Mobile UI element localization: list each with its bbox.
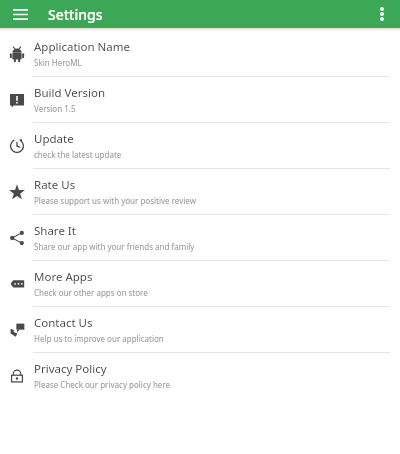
button[interactable]: Contact Us: [0, 307, 400, 352]
staticText: Skin HeroML: [34, 57, 82, 68]
button[interactable]: More options: [369, 1, 395, 27]
button[interactable]: Open navigation menu: [6, 0, 34, 28]
staticText: Check our other apps on store: [34, 287, 148, 298]
button[interactable]: Privacy Policy: [0, 353, 400, 398]
staticText: Share our app with your friends and fami…: [34, 241, 195, 252]
button[interactable]: Share It: [0, 215, 400, 260]
button[interactable]: Rate Us: [0, 169, 400, 214]
staticText: Update: [34, 131, 74, 147]
button[interactable]: Build Version: [0, 77, 400, 122]
staticText: Share It: [34, 223, 76, 239]
button[interactable]: Update: [0, 123, 400, 168]
staticText: More Apps: [34, 269, 93, 285]
button[interactable]: More Apps: [0, 261, 400, 306]
staticText: Contact Us: [34, 315, 93, 331]
staticText: Application Name: [34, 39, 131, 55]
staticText: Please support us with your positive rev…: [34, 195, 196, 206]
staticText: Privacy Policy: [34, 361, 107, 377]
button[interactable]: Application Name: [0, 31, 400, 76]
staticText: Settings: [48, 5, 103, 24]
staticText: Build Version: [34, 85, 106, 101]
staticText: Help us to improve our application: [34, 333, 164, 344]
staticText: Version 1.5: [34, 103, 76, 114]
staticText: Rate Us: [34, 177, 76, 193]
staticText: Please Check our privacy policy here: [34, 379, 171, 390]
staticText: check the latest update: [34, 149, 122, 160]
